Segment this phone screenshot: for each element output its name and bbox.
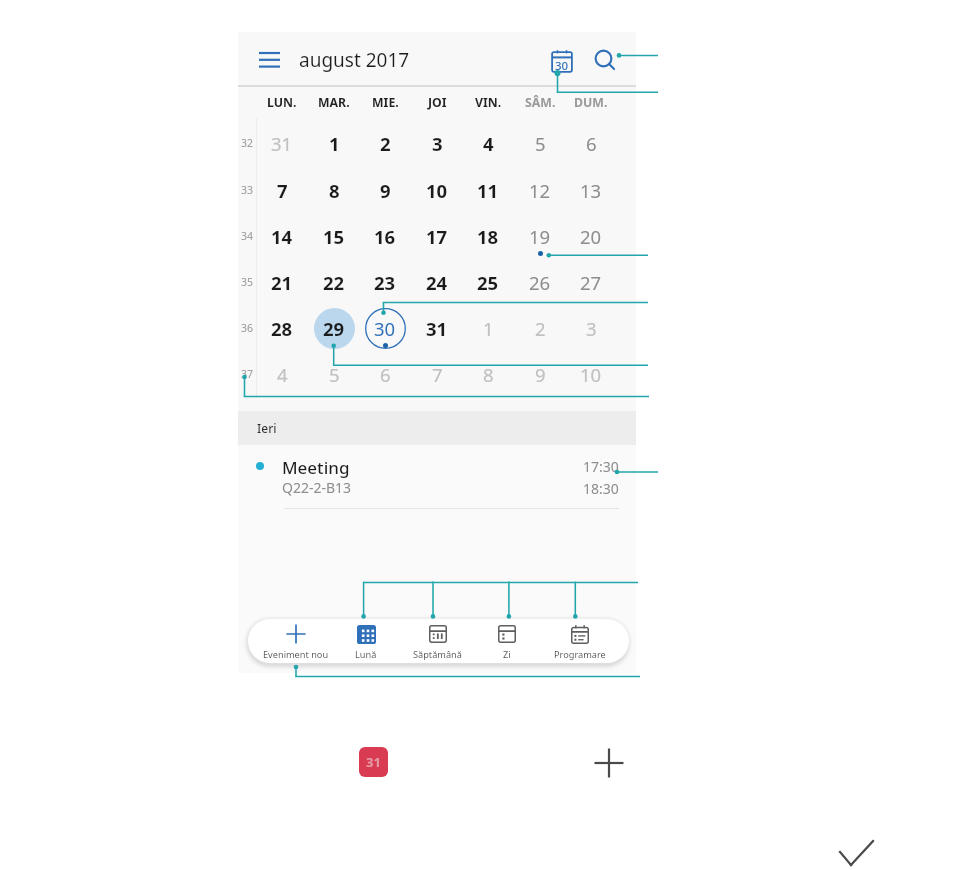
button[interactable]: Eveniment nou xyxy=(260,619,332,663)
staticText: 5 xyxy=(535,131,546,156)
staticText: 21 xyxy=(271,270,293,295)
button[interactable]: 11 xyxy=(462,167,514,213)
button[interactable]: Programare xyxy=(544,619,616,663)
staticText: 6 xyxy=(586,131,597,156)
button[interactable]: Add xyxy=(594,748,624,778)
button[interactable]: 10 xyxy=(411,167,463,213)
button[interactable]: 29 xyxy=(308,305,360,351)
staticText: august 2017 xyxy=(299,47,410,73)
staticText: DUM. xyxy=(574,94,608,111)
button[interactable]: 2 xyxy=(359,120,411,166)
button[interactable]: 4 xyxy=(462,120,514,166)
staticText: VIN. xyxy=(475,94,502,111)
staticText: 33 xyxy=(241,183,254,197)
button[interactable]: 3 xyxy=(565,305,617,351)
staticText: Meeting xyxy=(282,456,350,479)
button[interactable]: 16 xyxy=(359,213,411,259)
staticText: 10 xyxy=(426,178,448,203)
staticText: 28 xyxy=(271,316,293,341)
button[interactable]: 4 xyxy=(256,351,308,397)
staticText: 18:30 xyxy=(583,479,619,498)
staticText: 29 xyxy=(323,316,345,341)
button[interactable]: Săptămână xyxy=(401,619,473,663)
button[interactable]: 28 xyxy=(256,305,308,351)
staticText: 17:30 xyxy=(583,457,619,476)
button[interactable]: 14 xyxy=(256,213,308,259)
button[interactable]: 30 xyxy=(359,305,411,351)
staticText: 4 xyxy=(483,131,494,156)
staticText: MAR. xyxy=(318,94,350,111)
button[interactable]: 7 xyxy=(411,351,463,397)
button[interactable]: 12 xyxy=(514,167,566,213)
staticText: Săptămână xyxy=(413,648,462,661)
button[interactable]: Today xyxy=(545,45,579,79)
button[interactable]: 13 xyxy=(565,167,617,213)
button[interactable]: 23 xyxy=(359,259,411,305)
button[interactable]: 18 xyxy=(462,213,514,259)
staticText: 15 xyxy=(323,224,345,249)
button[interactable]: Lună xyxy=(330,619,402,663)
button[interactable]: 15 xyxy=(308,213,360,259)
button[interactable]: 2 xyxy=(514,305,566,351)
staticText: 30 xyxy=(555,58,569,74)
button[interactable]: 24 xyxy=(411,259,463,305)
staticText: 13 xyxy=(580,178,602,203)
staticText: 37 xyxy=(241,367,254,381)
staticText: Eveniment nou xyxy=(263,648,329,661)
button[interactable]: 3 xyxy=(411,120,463,166)
staticText: 8 xyxy=(329,178,340,203)
staticText: 31 xyxy=(426,316,448,341)
button[interactable]: Calendar xyxy=(359,747,388,777)
button[interactable]: 20 xyxy=(565,213,617,259)
button[interactable]: 9 xyxy=(514,351,566,397)
staticText: Ieri xyxy=(257,420,277,436)
staticText: 3 xyxy=(432,131,443,156)
staticText: 19 xyxy=(529,224,551,249)
staticText: 32 xyxy=(241,136,254,150)
staticText: 9 xyxy=(380,178,391,203)
button[interactable]: 6 xyxy=(359,351,411,397)
button[interactable]: 8 xyxy=(308,167,360,213)
button[interactable]: 21 xyxy=(256,259,308,305)
button[interactable]: 31 xyxy=(256,120,308,166)
staticText: Zi xyxy=(503,648,511,661)
button[interactable]: 26 xyxy=(514,259,566,305)
button[interactable]: Meeting xyxy=(238,445,636,525)
staticText: SÂM. xyxy=(525,94,556,111)
button[interactable]: 31 xyxy=(411,305,463,351)
button[interactable]: 5 xyxy=(514,120,566,166)
staticText: 6 xyxy=(380,362,391,387)
staticText: 24 xyxy=(426,270,448,295)
staticText: 27 xyxy=(580,270,602,295)
button[interactable]: 10 xyxy=(565,351,617,397)
button[interactable]: 17 xyxy=(411,213,463,259)
button[interactable]: Search xyxy=(588,43,622,77)
staticText: 30 xyxy=(374,316,396,341)
button[interactable]: 27 xyxy=(565,259,617,305)
staticText: 16 xyxy=(374,224,396,249)
button[interactable]: 1 xyxy=(308,120,360,166)
button[interactable]: 5 xyxy=(308,351,360,397)
button[interactable]: Menu xyxy=(242,36,296,82)
staticText: 25 xyxy=(477,270,499,295)
staticText: 18 xyxy=(477,224,499,249)
button[interactable]: 22 xyxy=(308,259,360,305)
button[interactable]: 25 xyxy=(462,259,514,305)
button[interactable]: 19 xyxy=(514,213,566,259)
staticText: 7 xyxy=(277,178,288,203)
button[interactable]: Zi xyxy=(471,619,543,663)
button[interactable]: Done xyxy=(836,836,878,870)
button[interactable]: 1 xyxy=(462,305,514,351)
staticText: 3 xyxy=(586,316,597,341)
staticText: 5 xyxy=(329,362,340,387)
button[interactable]: 9 xyxy=(359,167,411,213)
staticText: 1 xyxy=(329,131,340,156)
button[interactable]: 6 xyxy=(565,120,617,166)
staticText: 22 xyxy=(323,270,345,295)
staticText: 14 xyxy=(271,224,293,249)
staticText: LUN. xyxy=(267,94,297,111)
button[interactable]: 7 xyxy=(256,167,308,213)
staticText: 34 xyxy=(241,229,254,243)
staticText: 31 xyxy=(271,131,293,156)
button[interactable]: 8 xyxy=(462,351,514,397)
